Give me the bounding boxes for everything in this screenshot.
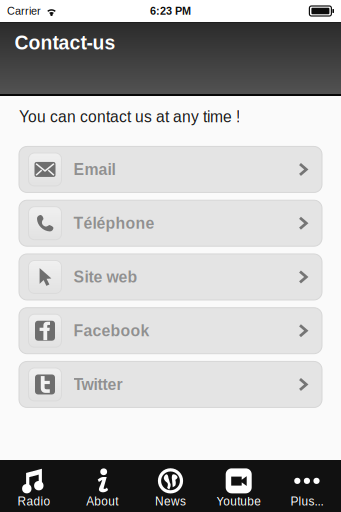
staticText: Contact-us — [14, 32, 115, 54]
staticText: News — [155, 495, 186, 508]
staticText: Twitter — [73, 376, 122, 393]
staticText: Email — [73, 161, 115, 178]
staticText: You can contact us at any time ! — [19, 108, 240, 125]
staticText: About — [86, 495, 118, 508]
button[interactable]: Site web — [19, 254, 322, 300]
button[interactable]: Youtube — [205, 460, 273, 512]
button[interactable]: Twitter — [19, 361, 322, 407]
button[interactable]: News — [136, 460, 205, 512]
staticText: 6:23 PM — [150, 5, 191, 17]
staticText: Facebook — [73, 322, 149, 340]
staticText: Plus... — [290, 495, 323, 508]
button[interactable]: Radio — [0, 460, 68, 512]
staticText: Radio — [18, 495, 51, 508]
button[interactable]: Téléphone — [19, 200, 322, 246]
button[interactable]: Email — [19, 146, 322, 192]
staticText: Téléphone — [73, 214, 154, 232]
staticText: Site web — [73, 268, 137, 286]
button[interactable]: Facebook — [19, 308, 322, 354]
staticText: Youtube — [216, 495, 261, 508]
button[interactable]: About — [68, 460, 136, 512]
button[interactable]: Plus... — [273, 460, 341, 512]
staticText: Carrier — [7, 5, 41, 17]
